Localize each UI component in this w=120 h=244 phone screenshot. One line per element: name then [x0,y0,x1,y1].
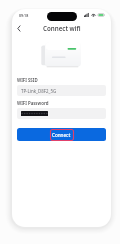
staticText: Connect [52,132,71,138]
button[interactable] [17,108,106,119]
staticText: Connect wifi [43,24,81,32]
staticText: WIFI Password [17,100,49,106]
staticText: WIFI SSID [17,77,38,83]
button[interactable]: Connect [17,128,106,141]
staticText: TP-Link_D8F2_5G [21,88,57,94]
button[interactable]: Back [12,21,26,35]
button[interactable]: TP-Link_D8F2_5G [17,85,106,96]
staticText: 09:18 [19,13,29,18]
